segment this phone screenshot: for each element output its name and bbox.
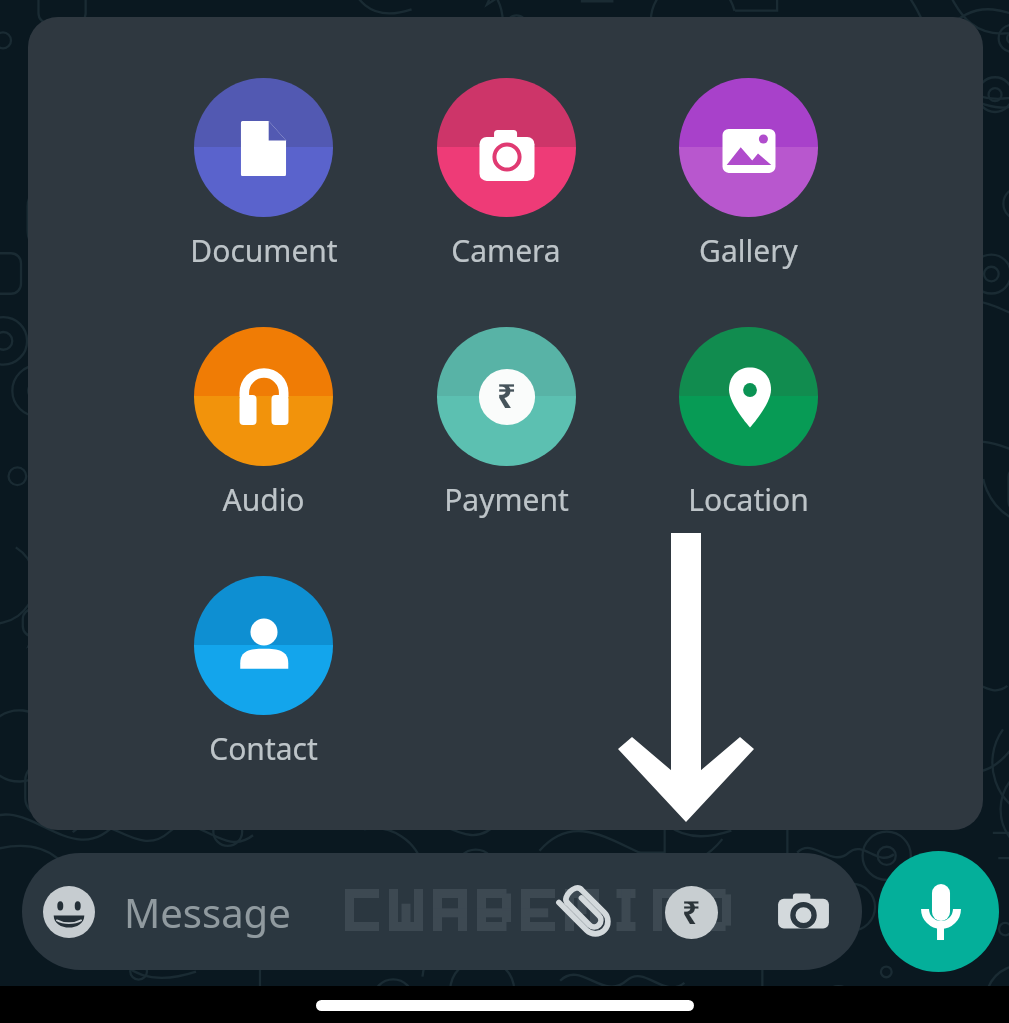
staticText: Audio <box>222 479 305 520</box>
staticText: ₹ <box>682 890 701 934</box>
staticText: Gallery <box>699 230 798 271</box>
button[interactable]: Message <box>22 853 862 970</box>
button[interactable]: Document <box>142 78 385 271</box>
staticText: ₹ <box>497 373 516 418</box>
button[interactable]: Location <box>627 327 869 520</box>
staticText: Camera <box>451 230 561 271</box>
button[interactable]: Camera <box>385 78 627 271</box>
button[interactable]: Contact <box>142 576 384 769</box>
button[interactable]: Voice message <box>878 851 999 972</box>
staticText: Message <box>124 885 291 939</box>
staticText: Document <box>190 230 338 271</box>
staticText: Payment <box>444 479 569 520</box>
button[interactable]: ₹ <box>385 327 627 520</box>
button[interactable]: Audio <box>142 327 385 520</box>
button[interactable]: Gallery <box>627 78 869 271</box>
staticText: Location <box>688 479 809 520</box>
staticText: Contact <box>209 728 318 769</box>
